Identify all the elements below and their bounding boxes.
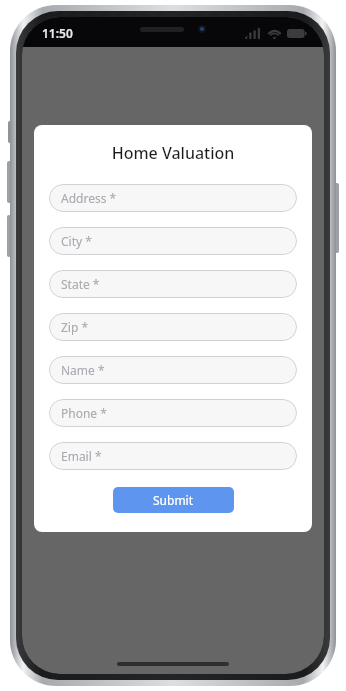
staticText: Home Valuation xyxy=(49,142,297,164)
button[interactable]: Phone * xyxy=(49,399,297,427)
staticText: State * xyxy=(61,276,100,292)
staticText: Name * xyxy=(61,362,105,378)
staticText: Phone * xyxy=(61,405,107,421)
staticText: Zip * xyxy=(61,319,89,335)
button[interactable]: City * xyxy=(49,227,297,255)
button[interactable]: Address * xyxy=(49,184,297,212)
button[interactable]: Zip * xyxy=(49,313,297,341)
staticText: Address * xyxy=(61,190,117,206)
button[interactable]: Submit xyxy=(113,487,234,513)
button[interactable]: Email * xyxy=(49,442,297,470)
button[interactable]: Name * xyxy=(49,356,297,384)
staticText: City * xyxy=(61,233,92,249)
button[interactable]: State * xyxy=(49,270,297,298)
staticText: Email * xyxy=(61,448,102,464)
staticText: 11:50 xyxy=(42,25,73,41)
staticText: Submit xyxy=(153,492,194,508)
